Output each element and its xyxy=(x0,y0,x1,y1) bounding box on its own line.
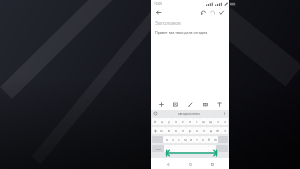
button[interactable]: щ xyxy=(207,118,214,125)
button[interactable]: и xyxy=(188,136,194,143)
staticText: й xyxy=(154,120,156,124)
button[interactable]: Sticker xyxy=(153,111,158,116)
button[interactable]: Text format xyxy=(214,99,224,109)
button[interactable]: Undo xyxy=(199,8,208,17)
button[interactable]: ы xyxy=(158,127,165,134)
button[interactable]: . xyxy=(209,145,216,152)
staticText: е xyxy=(182,120,184,124)
button[interactable]: г xyxy=(193,118,200,125)
button[interactable]: Home xyxy=(185,159,195,169)
staticText: автодополнить xyxy=(178,112,201,116)
staticText: ю xyxy=(214,138,217,142)
staticText: 10:05 xyxy=(154,2,163,6)
button[interactable]: д xyxy=(207,127,214,134)
staticText: щ xyxy=(209,120,212,124)
staticText: ф xyxy=(154,129,157,133)
button[interactable]: я xyxy=(163,136,170,143)
staticText: ш xyxy=(202,120,205,124)
staticText: з xyxy=(217,120,219,124)
button[interactable]: ь xyxy=(200,136,206,143)
staticText: в xyxy=(168,129,170,133)
button[interactable]: ф xyxy=(152,127,158,134)
button[interactable]: л xyxy=(200,127,207,134)
button[interactable]: Заголовок xyxy=(155,18,225,98)
button[interactable]: ю xyxy=(212,136,218,143)
button[interactable]: о xyxy=(193,127,200,134)
button[interactable]: Add xyxy=(156,99,166,109)
button[interactable]: Recents xyxy=(207,159,217,169)
button[interactable]: Redo xyxy=(208,8,217,17)
button[interactable]: ш xyxy=(200,118,207,125)
button[interactable]: , xyxy=(164,145,171,152)
button[interactable]: н xyxy=(186,118,193,125)
button[interactable]: а xyxy=(172,127,179,134)
button[interactable]: в xyxy=(165,127,172,134)
staticText: ?123 xyxy=(155,147,161,150)
staticText: л xyxy=(203,129,205,133)
staticText: п xyxy=(182,129,184,133)
staticText: Заголовок xyxy=(155,19,182,26)
button[interactable]: ц xyxy=(158,118,165,125)
staticText: я xyxy=(166,138,168,142)
button[interactable]: Keyboard settings xyxy=(222,111,227,116)
staticText: Привет как твои дела сегодня xyxy=(155,30,208,35)
button[interactable]: Camera xyxy=(200,99,210,109)
staticText: у xyxy=(168,120,170,124)
staticText: к xyxy=(175,120,177,124)
button[interactable]: с xyxy=(176,136,182,143)
button[interactable]: р xyxy=(186,127,193,134)
button[interactable] xyxy=(216,145,228,152)
staticText: а xyxy=(175,129,177,133)
staticText: г xyxy=(196,120,198,124)
button[interactable]: й xyxy=(152,118,158,125)
button[interactable]: Image xyxy=(170,99,180,109)
staticText: м xyxy=(184,138,187,142)
button[interactable]: Draw xyxy=(185,99,195,109)
button[interactable]: м xyxy=(182,136,188,143)
button[interactable]: Back xyxy=(163,159,173,169)
button[interactable]: э xyxy=(221,127,228,134)
button[interactable]: ?123 xyxy=(152,145,164,152)
button[interactable]: у xyxy=(165,118,172,125)
staticText: н xyxy=(189,120,191,124)
button[interactable]: х xyxy=(221,118,228,125)
staticText: д xyxy=(210,129,212,133)
staticText: х xyxy=(224,120,226,124)
button[interactable]: ж xyxy=(214,127,221,134)
staticText: ь xyxy=(202,138,204,142)
staticText: , xyxy=(167,147,168,151)
staticText: ж xyxy=(216,129,219,133)
staticText: т xyxy=(196,138,198,142)
staticText: ч xyxy=(172,138,174,142)
button[interactable]: п xyxy=(179,127,186,134)
button[interactable]: ч xyxy=(170,136,176,143)
button[interactable]: б xyxy=(206,136,212,143)
button[interactable]: Save xyxy=(217,8,226,17)
button[interactable]: т xyxy=(194,136,200,143)
button[interactable]: к xyxy=(172,118,179,125)
staticText: э xyxy=(224,129,226,133)
staticText: ы xyxy=(160,129,163,133)
staticText: б xyxy=(208,138,210,142)
staticText: . xyxy=(212,147,213,151)
button[interactable]: Back xyxy=(154,8,163,17)
staticText: и xyxy=(190,138,192,142)
staticText: с xyxy=(178,138,180,142)
staticText: р xyxy=(189,129,191,133)
staticText: о xyxy=(196,129,198,133)
staticText: ц xyxy=(161,120,163,124)
button[interactable]: е xyxy=(179,118,186,125)
button[interactable]: з xyxy=(214,118,221,125)
